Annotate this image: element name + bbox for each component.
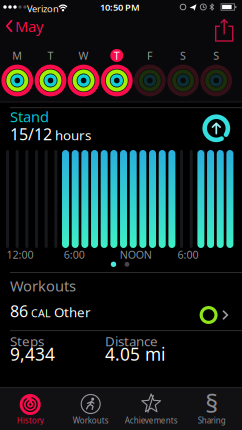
staticText: T bbox=[114, 48, 120, 63]
staticText: Stand bbox=[10, 107, 49, 126]
staticText: CAL bbox=[31, 306, 51, 320]
button[interactable] bbox=[215, 24, 233, 41]
staticText: 10:50 PM bbox=[100, 1, 140, 13]
staticText: 6:00 bbox=[64, 248, 85, 262]
button[interactable]: § bbox=[181, 388, 242, 430]
staticText: S bbox=[213, 48, 219, 63]
staticText: W bbox=[79, 48, 89, 63]
staticText: Workouts bbox=[73, 415, 109, 426]
staticText: Sharing bbox=[198, 415, 226, 426]
button[interactable]: S bbox=[166, 46, 200, 100]
staticText: Distance bbox=[105, 332, 158, 350]
staticText: 4.05 mi bbox=[105, 342, 165, 365]
button[interactable]: History bbox=[0, 388, 60, 430]
staticText: hours bbox=[55, 126, 91, 144]
staticText: 9,434 bbox=[10, 342, 55, 365]
button[interactable]: M bbox=[1, 46, 34, 100]
button[interactable]: T bbox=[100, 46, 133, 100]
button[interactable]: W bbox=[67, 46, 100, 100]
staticText: 15/12 bbox=[10, 123, 52, 144]
button[interactable] bbox=[202, 114, 230, 142]
staticText: Achievements bbox=[125, 415, 178, 426]
button[interactable]: May bbox=[6, 16, 43, 36]
staticText: Workouts bbox=[10, 276, 76, 295]
button[interactable]: T bbox=[34, 46, 67, 100]
staticText: Verizon bbox=[27, 2, 59, 15]
staticText: NOON bbox=[120, 248, 152, 262]
button[interactable]: F bbox=[133, 46, 166, 100]
staticText: T bbox=[47, 48, 53, 63]
staticText: May bbox=[15, 16, 43, 36]
staticText: Steps bbox=[10, 332, 44, 350]
button[interactable]: Achievements bbox=[121, 388, 181, 430]
button[interactable]: Workouts bbox=[60, 388, 121, 430]
staticText: 86 bbox=[10, 300, 28, 321]
staticText: 12:00 bbox=[6, 248, 33, 262]
button[interactable]: 86 bbox=[0, 0, 242, 56]
staticText: § bbox=[205, 386, 218, 420]
staticText: Other bbox=[54, 303, 91, 321]
staticText: 6:00 bbox=[178, 248, 199, 262]
staticText: History bbox=[17, 415, 44, 426]
staticText: M bbox=[12, 48, 22, 63]
button[interactable]: S bbox=[200, 46, 233, 100]
staticText: F bbox=[147, 48, 153, 63]
staticText: S bbox=[180, 48, 186, 63]
